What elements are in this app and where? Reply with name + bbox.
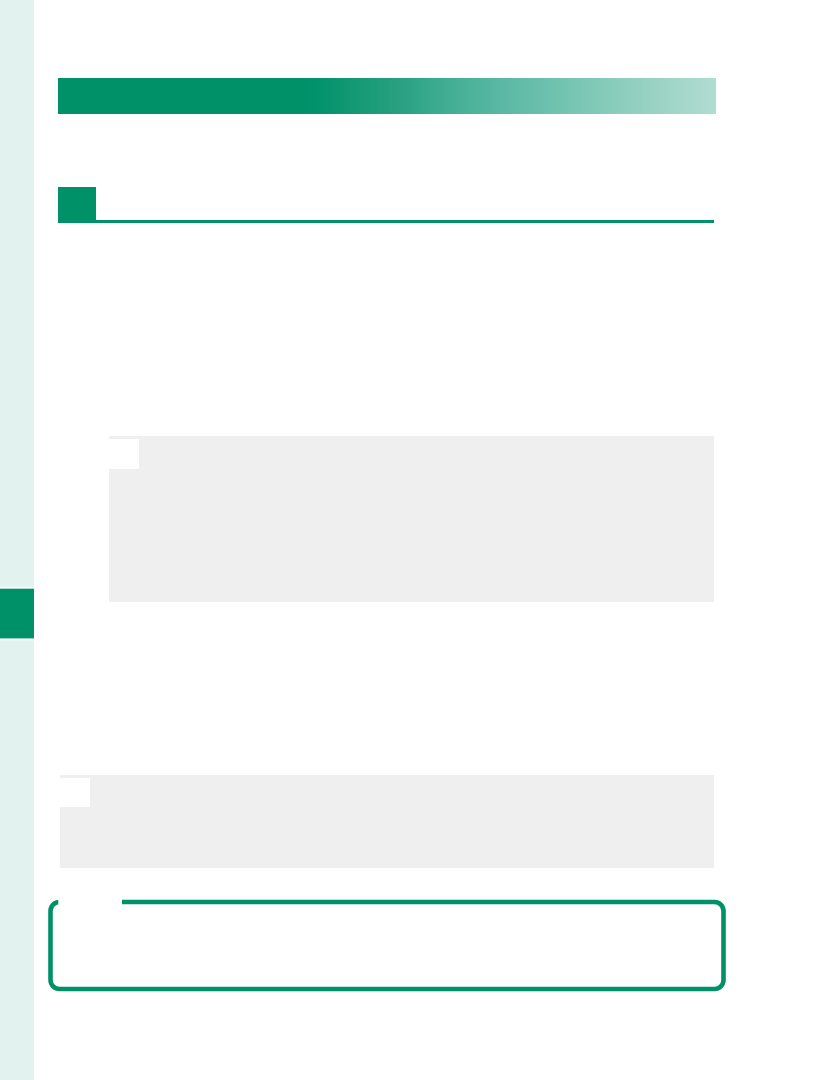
button[interactable]: Section heading [58, 187, 714, 223]
button[interactable]: Page banner [58, 78, 716, 114]
button[interactable]: Input field [46, 895, 728, 994]
button[interactable]: Current section [0, 589, 34, 639]
